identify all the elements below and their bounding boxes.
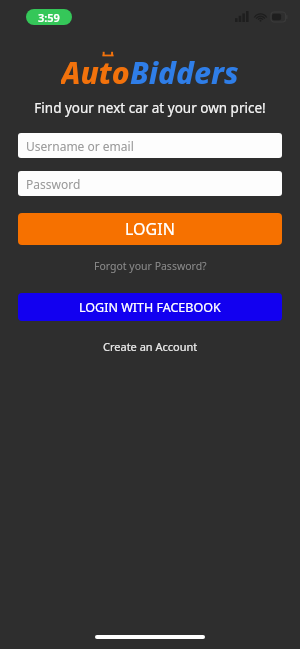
button[interactable]: Create an Account	[95, 335, 206, 358]
button[interactable]: Password	[18, 171, 282, 196]
staticText: Bidders	[130, 52, 239, 86]
button[interactable]: LOGIN WITH FACEBOOK	[18, 293, 282, 321]
button[interactable]: Forgot your Password?	[86, 255, 215, 277]
staticText: LOGIN	[125, 218, 175, 240]
staticText: Username or email	[26, 138, 134, 154]
button[interactable]: Username or email	[18, 133, 282, 158]
button[interactable]: LOGIN	[18, 213, 282, 245]
staticText: Password	[26, 176, 81, 192]
staticText: Forgot your Password?	[94, 259, 207, 273]
staticText: Find your next car at your own price!	[34, 99, 266, 117]
staticText: 3:59	[38, 10, 60, 25]
staticText: Create an Account	[103, 339, 198, 354]
staticText: LOGIN WITH FACEBOOK	[79, 299, 221, 316]
staticText: Auto	[61, 52, 130, 86]
